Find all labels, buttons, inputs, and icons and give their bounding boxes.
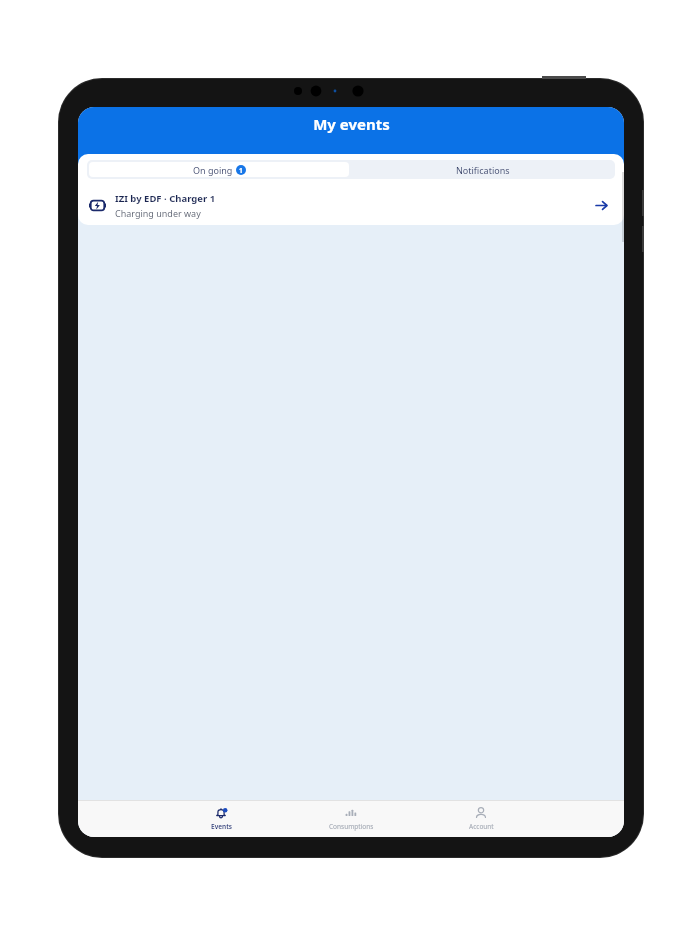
staticText: My events [313, 114, 390, 134]
staticText: Consumptions [329, 822, 374, 831]
staticText: 1 [239, 166, 243, 175]
button[interactable]: IZI by EDF · Charger 1 [78, 185, 624, 225]
staticText: Notifications [456, 164, 510, 176]
button[interactable]: Account [416, 800, 546, 837]
other: Open event [592, 196, 610, 214]
staticText: Events [211, 822, 232, 831]
staticText: IZI by EDF · Charger 1 [115, 192, 216, 205]
button[interactable]: Events [156, 800, 286, 837]
staticText: On going [193, 164, 233, 176]
staticText: Account [469, 822, 494, 831]
staticText: Charging under way [115, 207, 201, 219]
button[interactable]: On going [89, 162, 349, 177]
button[interactable]: Consumptions [286, 800, 416, 837]
button[interactable]: Notifications [351, 160, 615, 179]
